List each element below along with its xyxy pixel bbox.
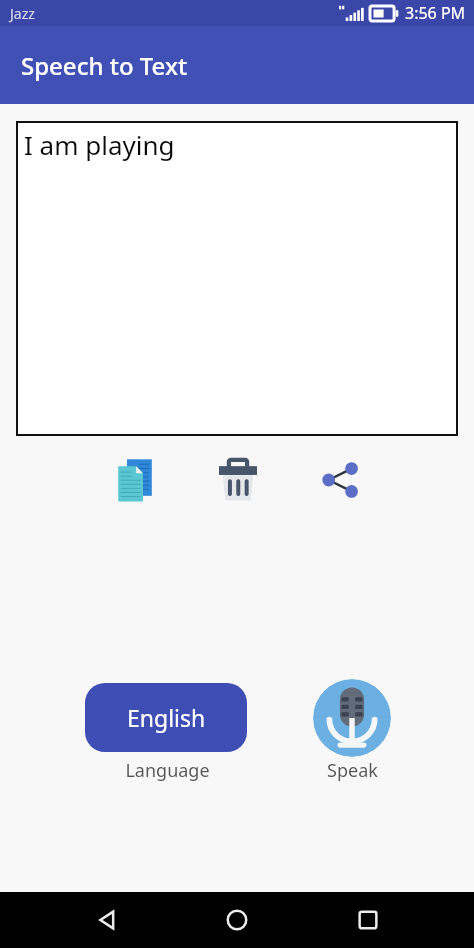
staticText: Language: [125, 758, 210, 783]
button[interactable]: Share: [309, 448, 373, 512]
button[interactable]: I am playing: [16, 121, 458, 436]
staticText: English: [127, 702, 206, 733]
staticText: I am playing: [24, 127, 175, 162]
button[interactable]: Back: [83, 896, 131, 944]
staticText: Jazz: [10, 4, 35, 23]
button[interactable]: Home: [213, 896, 261, 944]
staticText: Speak: [327, 758, 378, 783]
button[interactable]: Recents: [344, 896, 392, 944]
staticText: Speech to Text: [21, 49, 188, 82]
button[interactable]: Speak: [313, 679, 391, 757]
button[interactable]: English: [85, 683, 247, 752]
button[interactable]: Copy: [103, 448, 167, 512]
button[interactable]: Delete: [206, 448, 270, 512]
staticText: 3:56 PM: [405, 2, 466, 24]
